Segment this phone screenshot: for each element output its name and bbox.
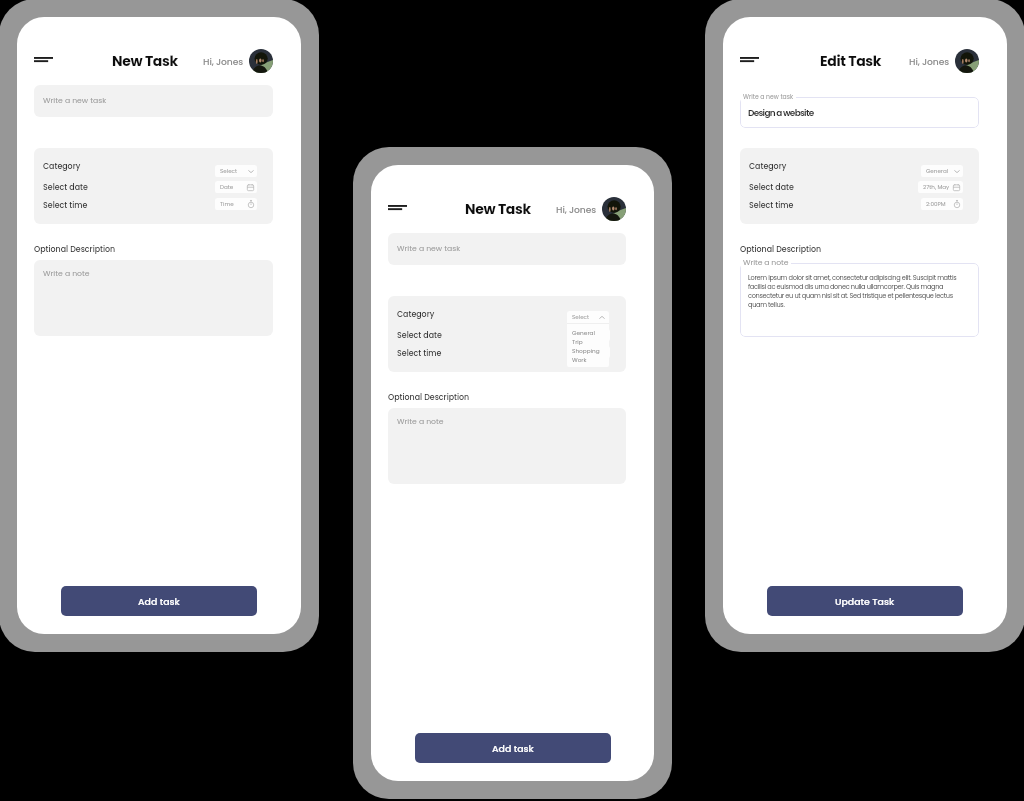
- staticText: Time: [220, 200, 234, 208]
- button[interactable]: Add task: [61, 586, 257, 616]
- staticText: 27th, May: [923, 183, 950, 191]
- button[interactable]: Write a note: [388, 408, 626, 484]
- button[interactable]: General: [921, 165, 963, 177]
- staticText: Optional Description: [34, 244, 116, 255]
- staticText: New Task: [112, 51, 178, 71]
- staticText: Select time: [749, 200, 794, 211]
- staticText: Write a new task: [743, 93, 794, 102]
- staticText: Category: [749, 161, 787, 172]
- staticText: Select date: [43, 182, 88, 193]
- staticText: Add task: [492, 742, 534, 755]
- staticText: Optional Description: [388, 392, 470, 403]
- staticText: Hi, Jones: [203, 55, 244, 68]
- button[interactable]: Profile: [602, 197, 626, 221]
- button[interactable]: Select: [215, 165, 257, 177]
- button[interactable]: Profile: [249, 49, 273, 73]
- button[interactable]: Work: [572, 355, 609, 364]
- button[interactable]: Menu: [388, 205, 407, 215]
- staticText: Category: [43, 161, 81, 172]
- button[interactable]: Time: [215, 198, 257, 210]
- button[interactable]: Write a new task: [388, 233, 626, 265]
- staticText: Add task: [138, 595, 180, 608]
- button[interactable]: Design a website: [740, 97, 979, 128]
- button[interactable]: General: [572, 328, 609, 337]
- staticText: Update Task: [835, 595, 895, 608]
- button[interactable]: 27th, May: [918, 181, 963, 193]
- staticText: Optional Description: [740, 244, 822, 255]
- staticText: Write a new task: [397, 243, 461, 254]
- staticText: Lorem ipsum dolor sit amet, consectetur …: [748, 273, 963, 309]
- staticText: Design a website: [748, 107, 964, 119]
- button[interactable]: Date: [215, 181, 257, 193]
- staticText: Date: [220, 183, 234, 191]
- staticText: Write a note: [743, 257, 789, 268]
- button[interactable]: Lorem ipsum dolor sit amet, consectetur …: [740, 263, 979, 337]
- staticText: Write a note: [397, 416, 444, 427]
- staticText: Write a new task: [43, 95, 107, 106]
- staticText: New Task: [465, 199, 531, 219]
- staticText: Hi, Jones: [909, 55, 950, 68]
- button[interactable]: Profile: [955, 49, 979, 73]
- staticText: Time: [573, 348, 587, 356]
- staticText: Select time: [43, 200, 88, 211]
- staticText: Write a note: [43, 268, 90, 279]
- button[interactable]: Time: [568, 346, 610, 358]
- button[interactable]: Write a new task: [34, 85, 273, 117]
- button[interactable]: Shopping: [572, 346, 609, 355]
- staticText: Select: [220, 167, 238, 175]
- staticText: General: [572, 329, 595, 337]
- staticText: 2:00PM: [926, 200, 946, 208]
- staticText: Edit Task: [820, 51, 882, 71]
- staticText: Select date: [749, 182, 794, 193]
- staticText: Select time: [397, 348, 442, 359]
- staticText: General: [926, 167, 949, 175]
- staticText: Select: [572, 313, 590, 321]
- button[interactable]: Update Task: [767, 586, 963, 616]
- staticText: Work: [572, 356, 587, 364]
- button[interactable]: Add task: [415, 733, 611, 763]
- staticText: Date: [573, 331, 587, 339]
- button[interactable]: Menu: [34, 57, 53, 67]
- button[interactable]: 2:00PM: [921, 198, 963, 210]
- button[interactable]: Write a note: [34, 260, 273, 336]
- staticText: Select date: [397, 330, 442, 341]
- staticText: Shopping: [572, 347, 600, 355]
- staticText: Hi, Jones: [556, 203, 597, 216]
- button[interactable]: Trip: [572, 337, 609, 346]
- button[interactable]: Menu: [740, 57, 759, 67]
- button[interactable]: Select: [567, 311, 609, 323]
- staticText: Trip: [572, 338, 583, 346]
- button[interactable]: Date: [568, 329, 610, 341]
- staticText: Category: [397, 309, 435, 320]
